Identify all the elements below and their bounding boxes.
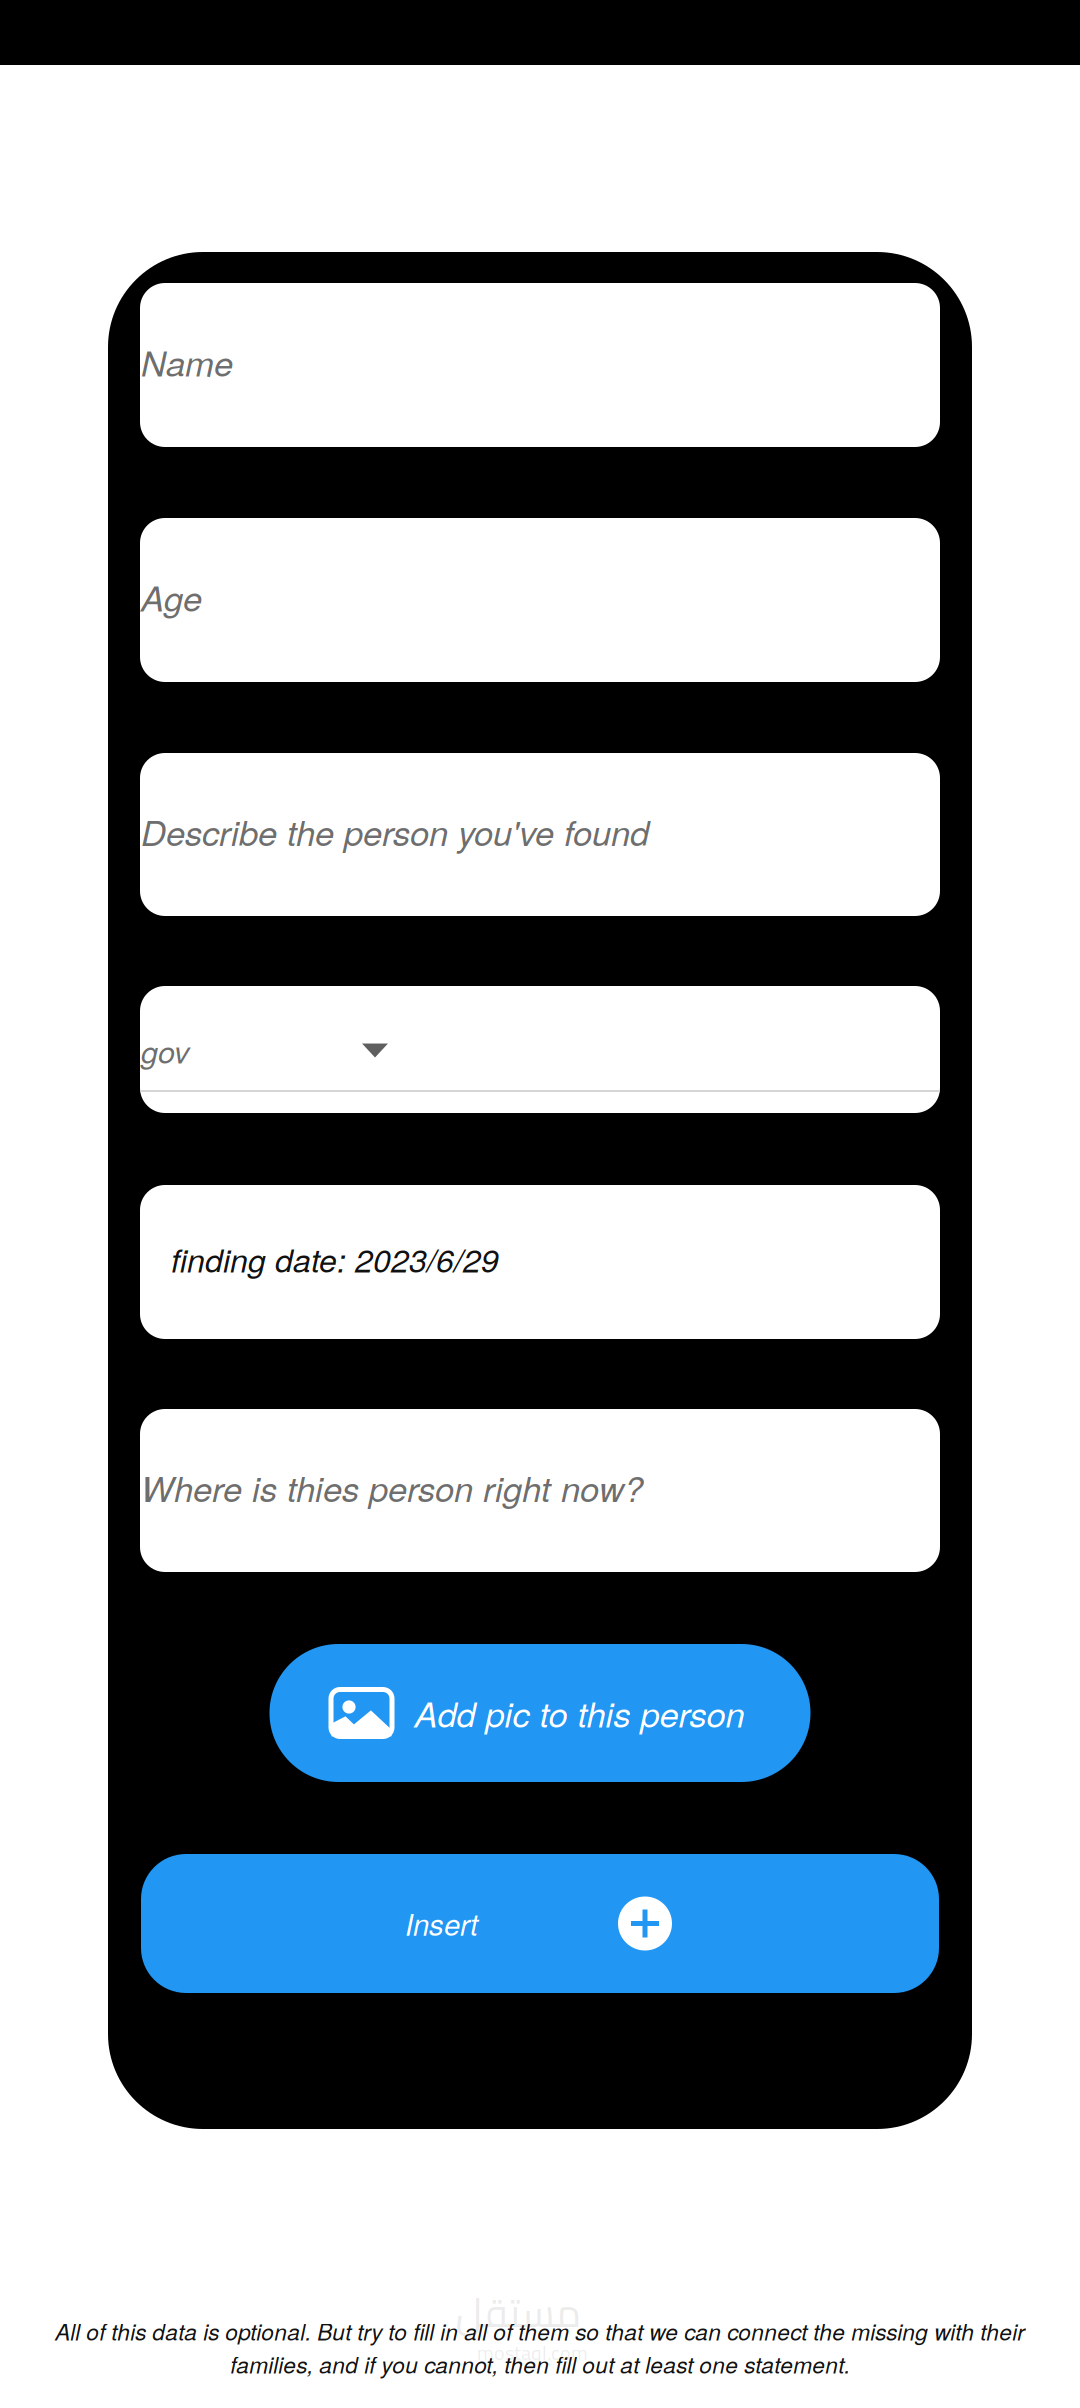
staticText: mostaql.com (477, 2334, 588, 2371)
button[interactable]: gov (140, 987, 940, 1114)
button[interactable]: Insert (141, 1854, 939, 1993)
staticText: Describe the person you've found (141, 807, 649, 856)
staticText: finding date: 2023/6/29 (171, 1236, 499, 1281)
staticText: Insert (405, 1903, 478, 1944)
staticText: Name (141, 338, 233, 386)
button[interactable]: Age (140, 518, 940, 682)
button[interactable]: Describe the person you've found (140, 753, 940, 916)
button[interactable]: Name (140, 283, 940, 447)
button[interactable]: finding date: 2023/6/29 (140, 1185, 940, 1339)
staticText: Where is thies person right now? (141, 1463, 643, 1512)
staticText: All of this data is optional. But try to… (55, 2315, 1025, 2380)
button[interactable]: Where is thies person right now? (140, 1409, 940, 1572)
staticText: Add pic to this person (414, 1689, 744, 1737)
staticText: gov (141, 1029, 189, 1072)
staticText: Age (141, 573, 202, 621)
button[interactable]: Add pic to this person (269, 1644, 810, 1782)
staticText: مستقل (455, 2275, 581, 2350)
